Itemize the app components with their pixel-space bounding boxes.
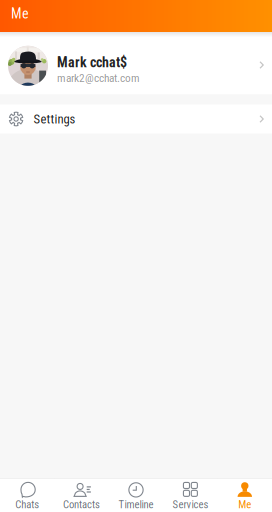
button[interactable]: Me <box>218 479 272 512</box>
staticText: Timeline <box>118 498 153 511</box>
staticText: Me <box>238 498 251 511</box>
staticText: Chats <box>15 498 39 511</box>
staticText: Mark cchat$ <box>57 54 127 71</box>
staticText: Settings <box>33 112 75 126</box>
button[interactable]: Chats <box>0 479 54 512</box>
button[interactable]: Services <box>163 479 218 512</box>
button[interactable]: Mark cchat$ <box>0 32 272 94</box>
button[interactable]: Timeline <box>109 479 163 512</box>
staticText: Services <box>172 498 208 511</box>
button[interactable]: Settings <box>0 104 272 133</box>
staticText: Contacts <box>63 498 100 511</box>
staticText: mark2@cchat.com <box>57 72 140 85</box>
staticText: Me <box>11 6 29 22</box>
button[interactable]: Contacts <box>54 479 109 512</box>
